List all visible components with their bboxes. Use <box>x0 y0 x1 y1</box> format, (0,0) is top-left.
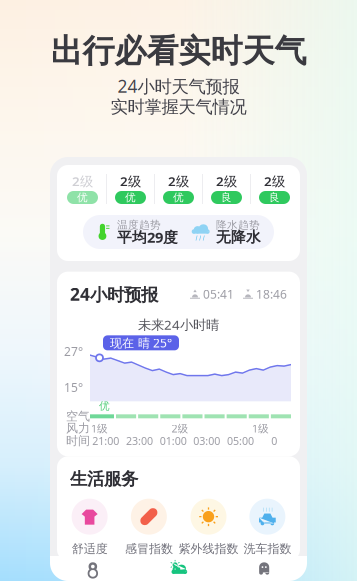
staticText: 良 <box>221 191 232 204</box>
staticText: 18:46 <box>256 286 287 302</box>
staticText: 优 <box>125 191 136 204</box>
staticText: 空气 <box>66 409 90 424</box>
button[interactable]: 我的 <box>221 556 307 581</box>
staticText: 平均29度 <box>117 227 178 247</box>
staticText: 降水趋势 <box>216 218 260 231</box>
staticText: 23:00 <box>126 434 153 448</box>
staticText: 1级 <box>252 421 269 435</box>
staticText: 优 <box>77 191 88 204</box>
staticText: 舒适度 <box>72 541 108 556</box>
staticText: 洗车指数 <box>243 541 291 556</box>
staticText: 2级 <box>171 421 188 435</box>
staticText: 24小时预报 <box>70 283 158 306</box>
staticText: 紫外线指数 <box>178 541 238 556</box>
button[interactable]: 紫外线指数 <box>178 499 238 555</box>
staticText: 15° <box>64 379 83 395</box>
staticText: 2级 <box>264 172 285 190</box>
button[interactable]: 洗车指数 <box>238 499 297 555</box>
button[interactable]: 城市 <box>50 556 136 581</box>
staticText: 温度趋势 <box>117 218 161 231</box>
staticText: 实时掌握天气情况 <box>110 96 246 118</box>
staticText: 2级 <box>216 172 237 190</box>
staticText: 现在 晴 25° <box>110 335 172 351</box>
staticText: 感冒指数 <box>125 541 173 556</box>
staticText: 出行必看实时天气 <box>50 31 306 71</box>
staticText: 优 <box>173 191 184 204</box>
staticText: 2级 <box>72 172 93 190</box>
staticText: 2级 <box>120 172 141 190</box>
button[interactable]: 舒适度 <box>60 499 119 555</box>
staticText: 03:00 <box>193 434 220 448</box>
staticText: 24小时天气预报 <box>117 74 239 97</box>
button[interactable]: 感冒指数 <box>119 499 178 555</box>
staticText: 0 <box>271 434 277 448</box>
staticText: 05:41 <box>203 286 234 302</box>
staticText: 2级 <box>168 172 189 190</box>
staticText: 优 <box>99 399 110 412</box>
staticText: 无降水 <box>216 228 261 246</box>
staticText: 27° <box>64 343 83 359</box>
staticText: 01:00 <box>160 434 187 448</box>
button[interactable]: 天气 <box>136 556 221 581</box>
staticText: 未来24小时晴 <box>138 316 219 333</box>
staticText: 1级 <box>91 421 108 435</box>
staticText: 时间 <box>66 433 90 448</box>
staticText: 05:00 <box>227 434 254 448</box>
staticText: 21:00 <box>92 434 119 448</box>
staticText: 良 <box>269 191 280 204</box>
staticText: 生活服务 <box>70 468 138 490</box>
staticText: 风力 <box>66 421 90 436</box>
